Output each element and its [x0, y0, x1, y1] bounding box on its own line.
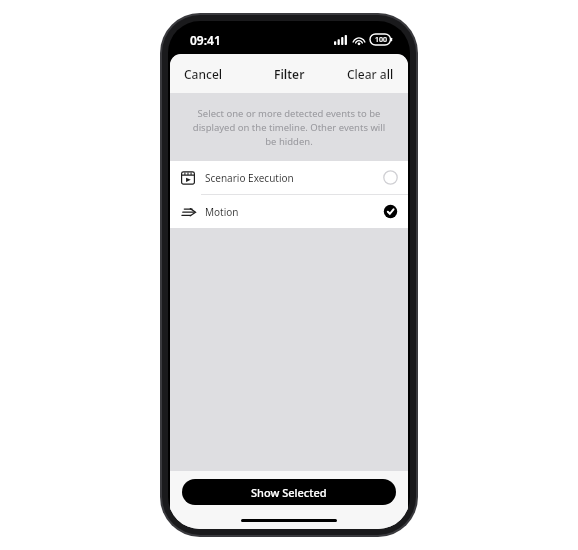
button[interactable]: Motion	[170, 195, 408, 228]
button[interactable]: Scenario Execution	[170, 161, 408, 194]
staticText: 09:41	[190, 32, 221, 48]
button[interactable]: Clear all	[333, 58, 408, 90]
staticText: 100	[375, 35, 388, 45]
staticText: Select one or more detected events to be…	[188, 107, 390, 148]
other: Selected	[383, 204, 398, 219]
staticText: Clear all	[347, 66, 394, 82]
button[interactable]: Show Selected	[182, 479, 396, 505]
button[interactable]: Cancel	[170, 58, 237, 90]
other: Not selected	[383, 170, 398, 185]
staticText: Cancel	[184, 66, 223, 82]
staticText: Filter	[274, 66, 305, 82]
staticText: Scenario Execution	[205, 171, 383, 185]
staticText: Motion	[205, 205, 383, 219]
staticText: Show Selected	[251, 485, 327, 500]
